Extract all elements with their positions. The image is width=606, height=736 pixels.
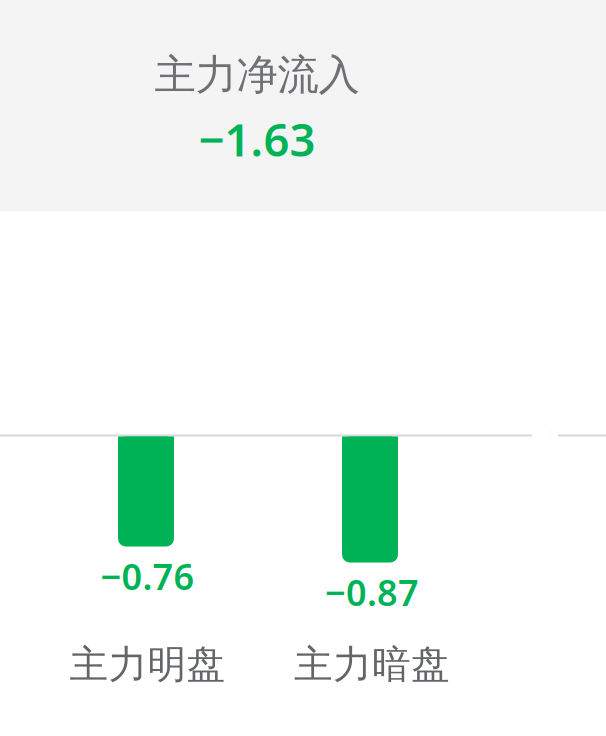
- staticText: 主力净流入: [154, 50, 359, 100]
- staticText: −0.87: [325, 568, 419, 616]
- staticText: −1.63: [198, 109, 315, 169]
- staticText: 主力暗盘: [294, 641, 450, 688]
- staticText: 主力明盘: [69, 641, 225, 688]
- button[interactable]: 主力暗盘 −0.87: [260, 434, 484, 734]
- button[interactable]: 主力明盘 −0.76: [35, 434, 259, 734]
- staticText: −0.76: [100, 552, 194, 600]
- button[interactable]: 主力净流入: [0, 0, 606, 211]
